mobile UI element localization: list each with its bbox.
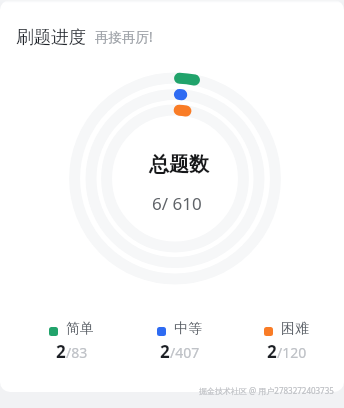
staticText: 再接再厉! xyxy=(95,28,153,46)
staticText: /83 xyxy=(66,343,88,362)
staticText: 掘金技术社区 @ 用户2783272403735 xyxy=(199,385,334,396)
staticText: 中等 xyxy=(174,320,202,338)
staticText: 困难 xyxy=(281,320,309,338)
button[interactable]: 简单 xyxy=(49,320,94,363)
staticText: 6/ 610 xyxy=(152,192,202,215)
staticText: 2 xyxy=(56,340,66,363)
staticText: 刷题进度 xyxy=(16,26,86,48)
staticText: 总题数 xyxy=(149,152,209,177)
button[interactable]: 困难 xyxy=(264,320,309,363)
staticText: 2 xyxy=(160,340,170,363)
staticText: 简单 xyxy=(66,320,94,338)
button[interactable]: 刷题进度 xyxy=(16,26,153,48)
staticText: /407 xyxy=(170,343,200,362)
staticText: 2 xyxy=(267,340,277,363)
staticText: /120 xyxy=(277,343,307,362)
button[interactable]: 中等 xyxy=(157,320,202,363)
